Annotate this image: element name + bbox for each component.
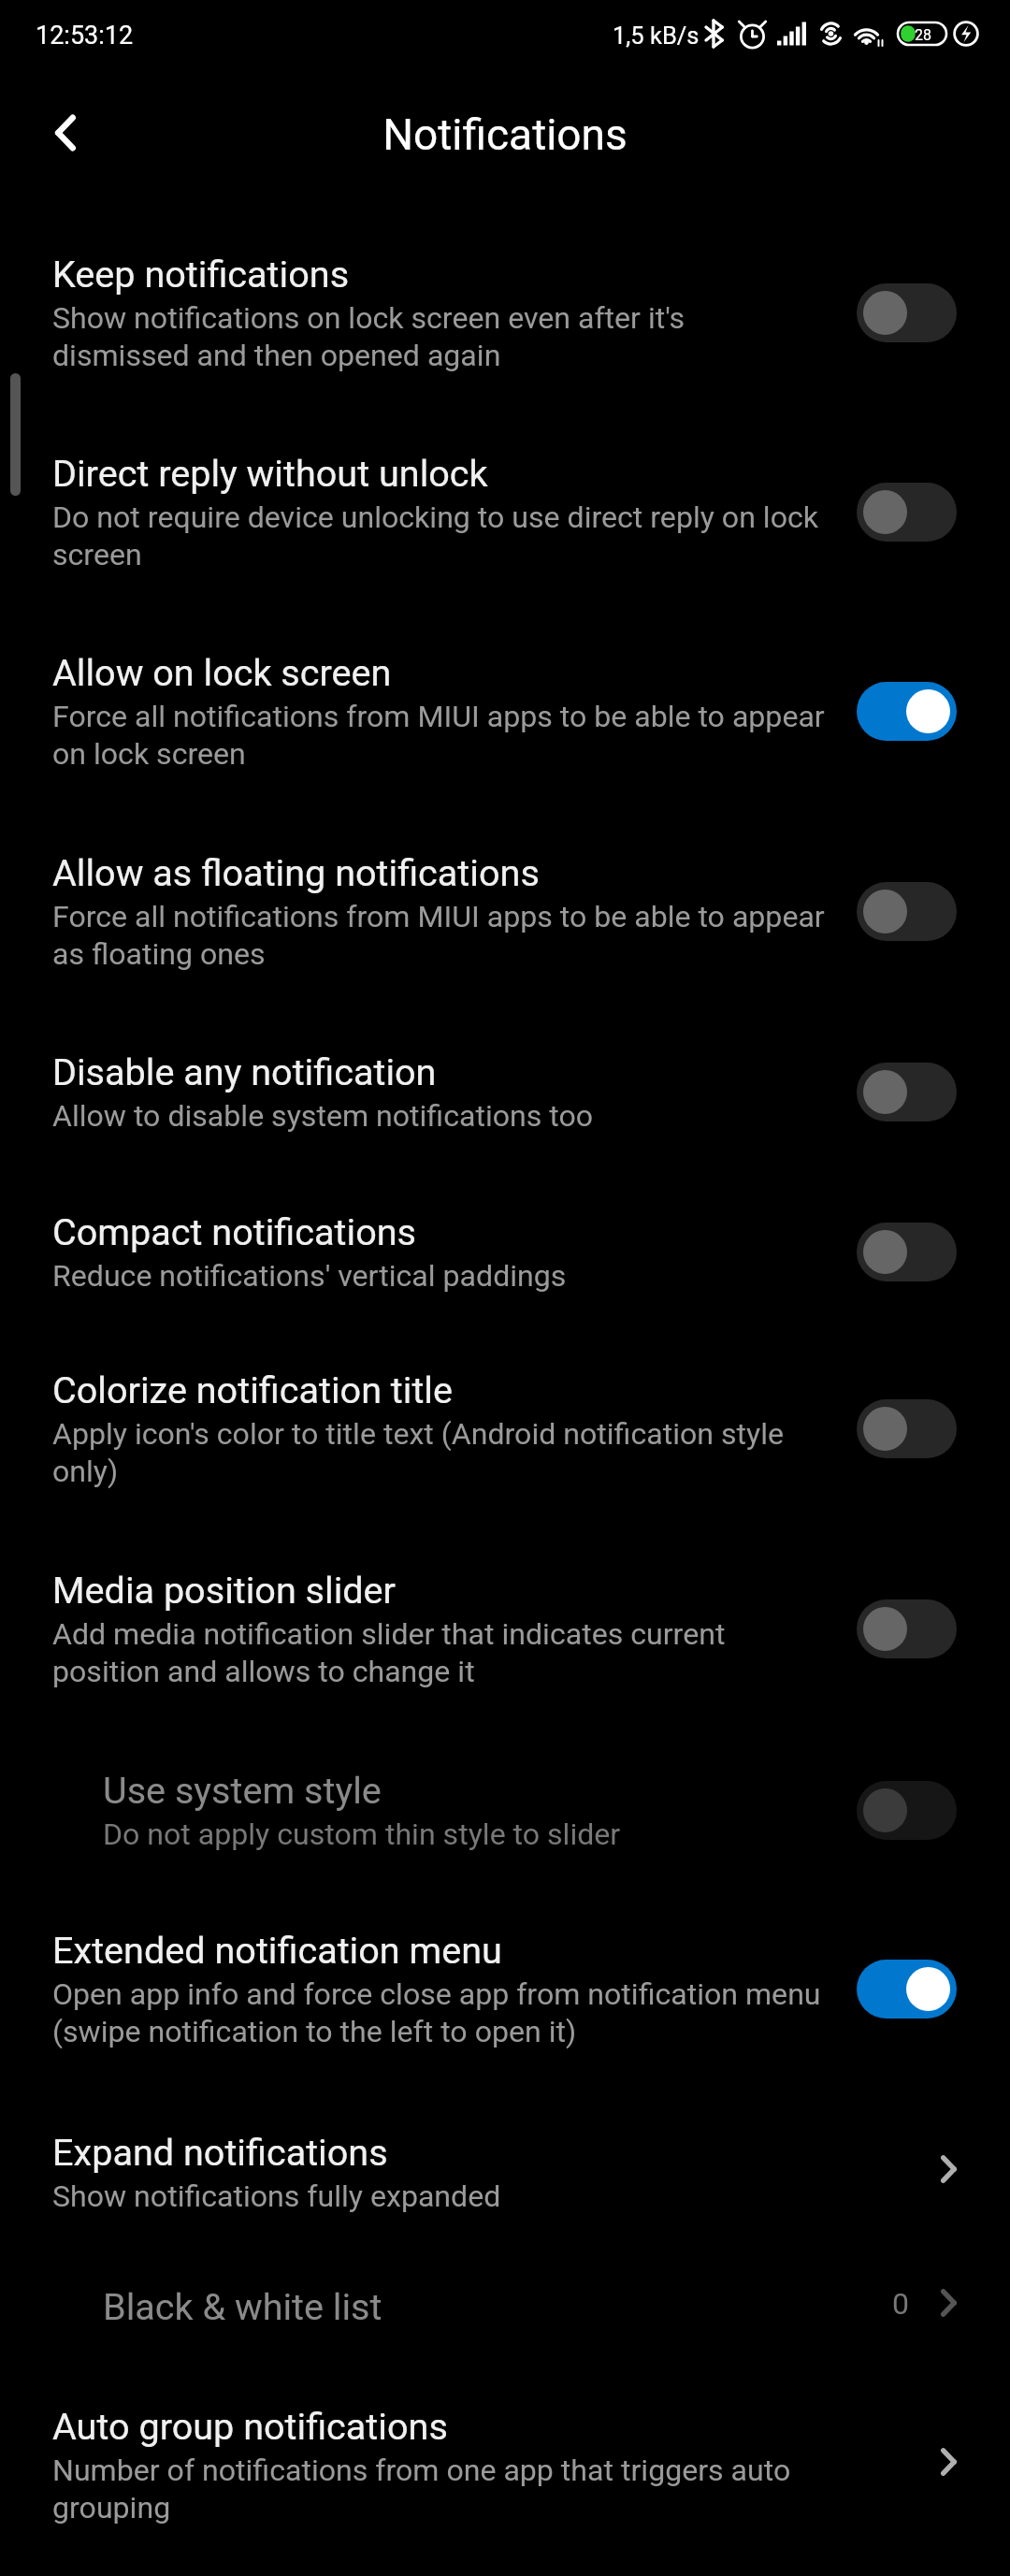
staticText: 0: [892, 2286, 909, 2322]
button[interactable]: Back: [37, 105, 94, 161]
button[interactable]: Colorize notification title: [0, 1341, 1010, 1541]
staticText: Expand notifications: [52, 2131, 388, 2174]
staticText: Disable any notification: [52, 1050, 437, 1093]
button[interactable]: Switch off: [857, 1223, 957, 1281]
staticText: Show notifications fully expanded: [52, 2178, 501, 2214]
staticText: 28: [915, 26, 931, 44]
button[interactable]: Auto group notifications: [0, 2378, 1010, 2576]
staticText: Allow as floating notifications: [52, 851, 540, 894]
staticText: Force all notifications from MIUI apps t…: [52, 899, 825, 972]
staticText: 1,5 kB/s: [613, 22, 700, 50]
staticText: Auto group notifications: [52, 2405, 448, 2448]
button[interactable]: Switch on: [857, 682, 957, 741]
button[interactable]: Switch off: [857, 882, 957, 941]
staticText: 12:53:12: [36, 21, 134, 51]
button[interactable]: Media position slider: [0, 1541, 1010, 1742]
staticText: Keep notifications: [52, 253, 350, 296]
staticText: Direct reply without unlock: [52, 452, 488, 495]
button[interactable]: Switch off: [857, 1399, 957, 1458]
staticText: Number of notifications from one app tha…: [52, 2453, 791, 2525]
button[interactable]: Use system style: [0, 1742, 1010, 1902]
button[interactable]: Switch off: [857, 1599, 957, 1658]
staticText: Do not require device unlocking to use d…: [52, 499, 819, 572]
button[interactable]: Switch off: [857, 483, 957, 542]
staticText: Colorize notification title: [52, 1368, 453, 1411]
button[interactable]: Direct reply without unlock: [0, 425, 1010, 624]
button[interactable]: Compact notifications: [0, 1183, 1010, 1341]
button[interactable]: Switch off: [857, 1063, 957, 1122]
button[interactable]: Disable any notification: [0, 1023, 1010, 1183]
button[interactable]: Switch off: [857, 283, 957, 342]
staticText: Media position slider: [52, 1569, 397, 1612]
staticText: Reduce notifications' vertical paddings: [52, 1258, 567, 1294]
staticText: Open app info and force close app from n…: [52, 1976, 821, 2049]
button[interactable]: Allow as floating notifications: [0, 824, 1010, 1023]
staticText: Apply icon's color to title text (Androi…: [52, 1416, 785, 1489]
staticText: Black & white list: [103, 2285, 382, 2328]
button[interactable]: Keep notifications: [0, 225, 1010, 425]
staticText: Add media notification slider that indic…: [52, 1616, 726, 1689]
staticText: Notifications: [382, 109, 628, 160]
staticText: Allow on lock screen: [52, 651, 392, 694]
button[interactable]: Black & white list: [0, 2258, 1010, 2378]
staticText: Extended notification menu: [52, 1929, 502, 1972]
button[interactable]: Extended notification menu: [0, 1902, 1010, 2104]
button[interactable]: Expand notifications: [0, 2104, 1010, 2258]
staticText: Do not apply custom thin style to slider: [103, 1816, 621, 1852]
staticText: Compact notifications: [52, 1210, 417, 1253]
staticText: Show notifications on lock screen even a…: [52, 300, 685, 373]
staticText: Allow to disable system notifications to…: [52, 1098, 594, 1134]
staticText: Use system style: [103, 1769, 382, 1812]
button[interactable]: Switch on: [857, 1960, 957, 2019]
staticText: Force all notifications from MIUI apps t…: [52, 699, 825, 772]
button[interactable]: Allow on lock screen: [0, 624, 1010, 824]
button[interactable]: Switch off: [857, 1781, 957, 1840]
